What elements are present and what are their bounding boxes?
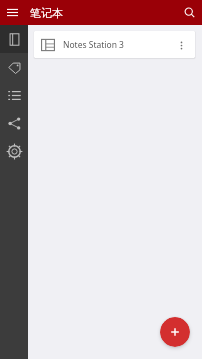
button[interactable]: Lists [0,81,28,109]
staticText: Notes Station 3 [63,39,124,51]
button[interactable]: Search [177,0,202,25]
button[interactable]: Create new note [160,317,190,347]
button[interactable]: Notebooks [0,25,28,53]
button[interactable]: Shared [0,109,28,137]
button[interactable]: More options [170,34,192,56]
button[interactable]: Notes Station 3 [34,31,195,58]
button[interactable]: Open navigation menu [0,0,25,25]
staticText: 笔记本 [30,6,63,20]
button[interactable]: Tags [0,53,28,81]
button[interactable]: Settings [0,137,28,165]
